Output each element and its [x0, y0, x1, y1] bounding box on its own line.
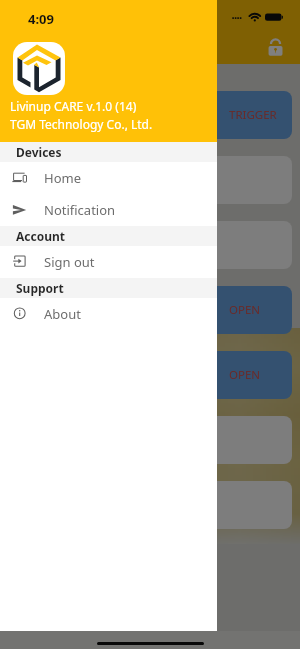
- button[interactable]: OPEN: [8, 286, 292, 334]
- staticText: TRIGGER: [229, 107, 277, 123]
- staticText: About: [44, 305, 81, 323]
- staticText: Account: [16, 228, 65, 244]
- staticText: TGM Technology Co., Ltd.: [10, 116, 153, 132]
- staticText: Livinup CARE v.1.0 (14): [10, 98, 137, 114]
- button[interactable]: OPEN: [8, 351, 292, 399]
- button[interactable]: [8, 416, 292, 464]
- staticText: 4:09: [28, 10, 54, 28]
- button[interactable]: Lock: [264, 36, 288, 60]
- staticText: Notification: [44, 201, 116, 219]
- staticText: OPEN: [229, 302, 261, 318]
- button[interactable]: Sign out: [0, 246, 217, 278]
- button[interactable]: TRIGGER: [8, 91, 292, 139]
- button[interactable]: Home: [0, 162, 217, 194]
- button[interactable]: About: [0, 298, 217, 330]
- button[interactable]: [8, 156, 292, 204]
- staticText: Devices: [16, 144, 62, 160]
- staticText: Support: [16, 280, 64, 296]
- button[interactable]: [8, 481, 292, 529]
- staticText: Home: [44, 169, 81, 187]
- staticText: OPEN: [229, 367, 261, 383]
- button[interactable]: [8, 221, 292, 269]
- button[interactable]: Notification: [0, 194, 217, 226]
- staticText: Sign out: [44, 253, 95, 271]
